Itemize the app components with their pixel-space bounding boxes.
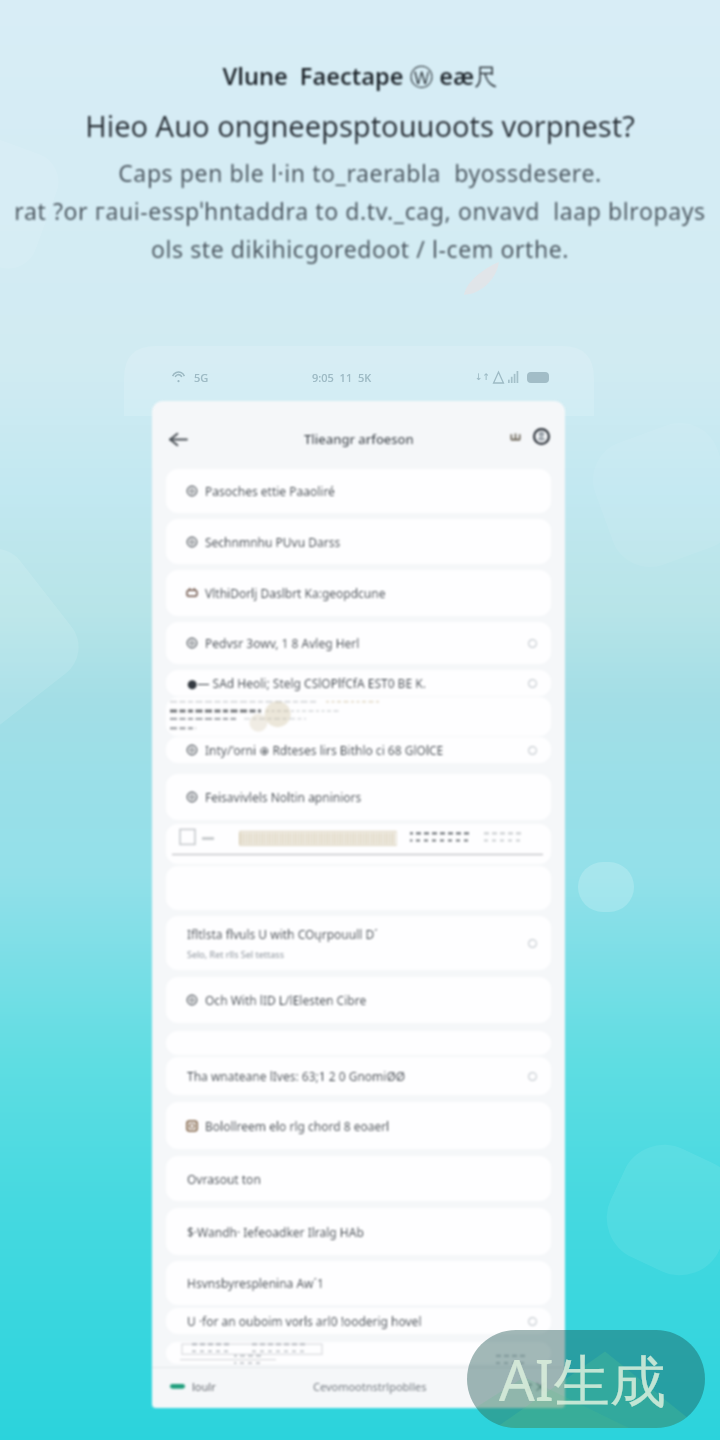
staticText: 9:05 11 5K: [312, 370, 372, 385]
button[interactable]: Pasoches ettie Paaoliré: [166, 469, 551, 513]
staticText: ↓↑: [475, 372, 491, 382]
button[interactable]: Inty/'orni ⊕ Rdteses lirs Bithlo ci 68 G…: [166, 737, 551, 763]
button[interactable]: Feisavivlels Noltin apniniors: [166, 774, 551, 820]
button[interactable]: Account: [528, 423, 554, 449]
button[interactable]: Ovrasout ton: [166, 1156, 551, 1201]
button[interactable]: ●— SAd Heoli; Stelg CSlOPlfCfA EST0 BE K…: [166, 670, 551, 696]
staticText: Och With lID L/lElesten Cibre: [205, 992, 367, 1008]
staticText: ●— SAd Heoli; Stelg CSlOPlfCfA EST0 BE K…: [187, 675, 426, 691]
staticText: AI生成: [499, 1341, 666, 1417]
staticText: Tlieangr arfoeson: [304, 430, 414, 448]
staticText: $·Wandh· Iefeoadker Ilralg HAb: [187, 1224, 364, 1240]
staticText: VlthiDorlj Daslbrt Ka:geopdcune: [205, 585, 386, 601]
staticText: 5G: [194, 370, 209, 385]
button[interactable]: [166, 697, 551, 736]
staticText: Vlune Faectape Ⓦ eæ尺: [222, 60, 498, 92]
button[interactable]: U ·for an ouboim vorls arl0 !ooderig hov…: [166, 1308, 551, 1334]
button[interactable]: Rewards: [503, 424, 527, 448]
button[interactable]: Sechnmnhu PUvu Darss: [166, 519, 551, 564]
staticText: Selo, Ret rlls Sel tettass: [187, 948, 284, 960]
staticText: Feisavivlels Noltin apniniors: [205, 789, 362, 805]
button[interactable]: Cevomootnstrlpoblles: [309, 1375, 431, 1398]
button[interactable]: loulr: [168, 1374, 218, 1399]
button[interactable]: More options: [522, 1375, 549, 1398]
staticText: Pasoches ettie Paaoliré: [205, 483, 335, 499]
button[interactable]: [166, 1342, 551, 1364]
button[interactable]: [166, 824, 551, 864]
staticText: Pedvsr 3owv, 1 8 Avleg Herl: [205, 635, 360, 651]
staticText: loulr: [192, 1379, 216, 1394]
button[interactable]: Hsvnsbyresplenina Aw´1: [166, 1261, 551, 1305]
button[interactable]: Bolollreem elo rlg chord 8 eoaerl: [166, 1102, 551, 1149]
staticText: Sechnmnhu PUvu Darss: [205, 534, 341, 550]
staticText: Ovrasout ton: [187, 1171, 261, 1187]
staticText: ♪ ⨉: [526, 1379, 545, 1394]
button[interactable]: Back: [161, 422, 195, 456]
button[interactable]: Ifltlsta flvuls U with COųrpouull D´: [166, 916, 551, 970]
button[interactable]: Pedvsr 3owv, 1 8 Avleg Herl: [166, 622, 551, 664]
button[interactable]: Tha wnateane lIves: 63;1 2 0 GnomiØØ: [166, 1057, 551, 1095]
staticText: Hieo Auo ongneepsptouuoots vorpnest?: [85, 106, 635, 145]
staticText: Caps pen ble l·in to_raerabla byossdesеr…: [14, 157, 706, 265]
button[interactable]: VlthiDorlj Daslbrt Ka:geopdcune: [166, 570, 551, 616]
staticText: Inty/'orni ⊕ Rdteses lirs Bithlo ci 68 G…: [205, 742, 444, 758]
button[interactable]: $·Wandh· Iefeoadker Ilralg HAb: [166, 1208, 551, 1255]
staticText: U ·for an ouboim vorls arl0 !ooderig hov…: [187, 1313, 422, 1329]
staticText: Tha wnateane lIves: 63;1 2 0 GnomiØØ: [187, 1068, 406, 1084]
button[interactable]: Och With lID L/lElesten Cibre: [166, 977, 551, 1023]
staticText: Bolollreem elo rlg chord 8 eoaerl: [205, 1118, 390, 1134]
staticText: Ifltlsta flvuls U with COųrpouull D´: [187, 926, 378, 942]
staticText: Hsvnsbyresplenina Aw´1: [187, 1275, 324, 1291]
